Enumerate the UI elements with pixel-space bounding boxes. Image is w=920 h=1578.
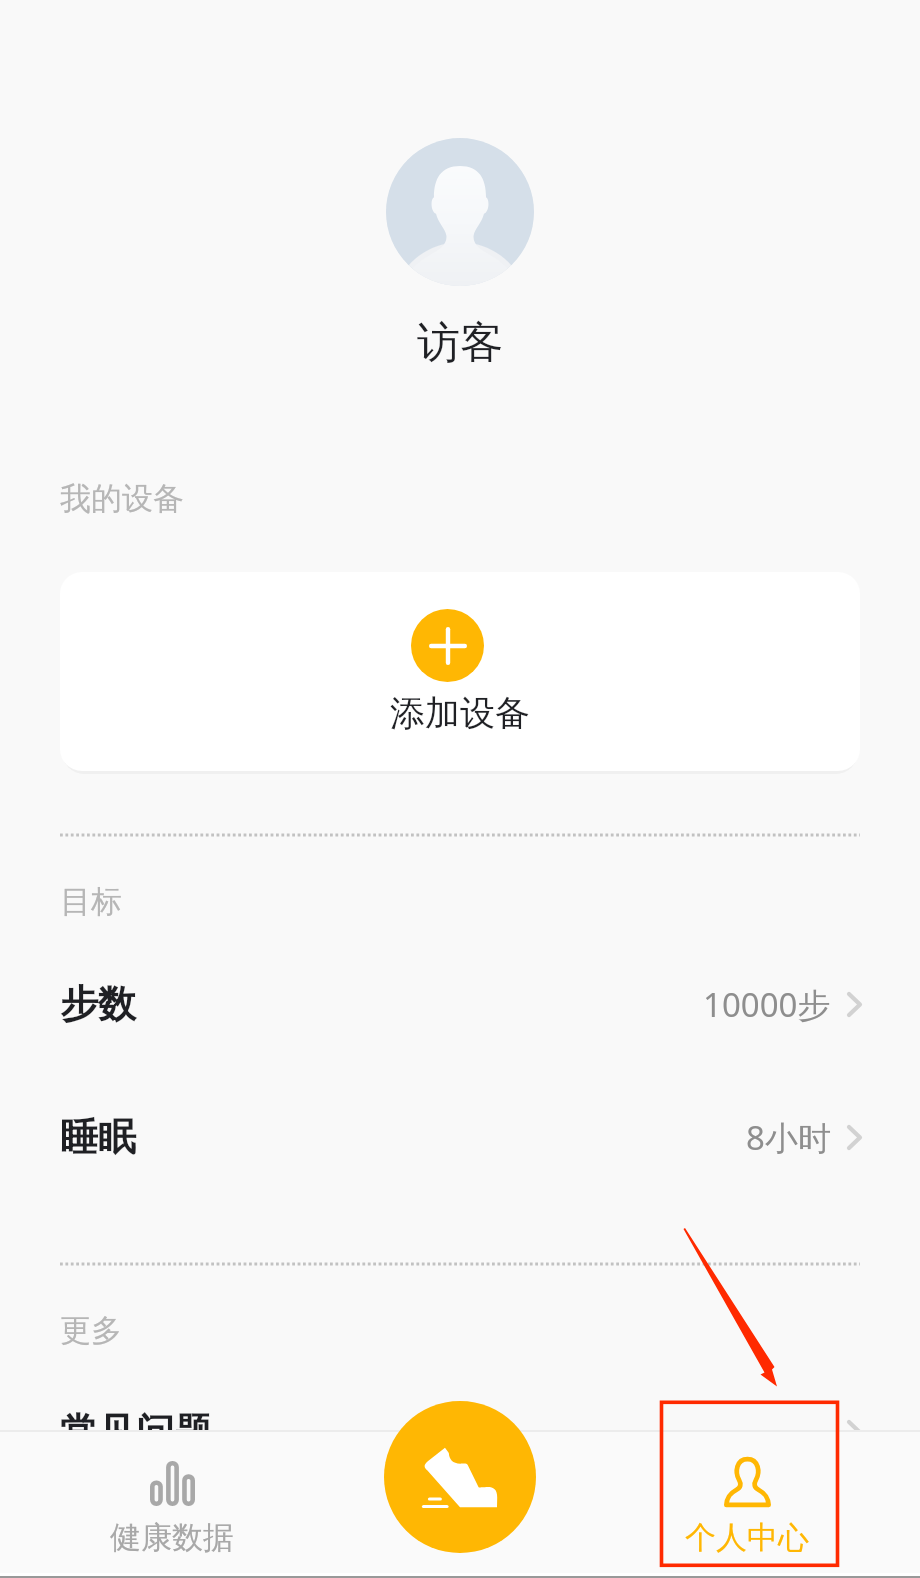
button[interactable]: 开始运动 [384,1401,536,1553]
staticText: 健康数据 [110,1518,234,1557]
staticText: 添加设备 [390,691,530,735]
staticText: 访客 [417,316,503,370]
button[interactable]: 睡眠 [0,1097,920,1177]
staticText: 常见问题 [60,1408,212,1456]
staticText: 10000步 [703,982,831,1027]
button[interactable]: 个人中心 [637,1434,857,1571]
staticText: 目标 [60,882,122,921]
staticText: 睡眠 [60,1113,136,1161]
button[interactable]: 健康数据 [62,1434,282,1571]
staticText: 个人中心 [685,1518,809,1557]
staticText: 我的设备 [60,479,184,518]
button[interactable]: 添加设备 [60,572,860,771]
staticText: 更多 [60,1311,122,1350]
staticText: 8小时 [746,1115,831,1160]
button[interactable]: 常见问题 [0,1392,920,1472]
button[interactable]: 步数 [0,964,920,1044]
staticText: 步数 [60,980,136,1028]
button[interactable]: 头像 [386,138,534,286]
